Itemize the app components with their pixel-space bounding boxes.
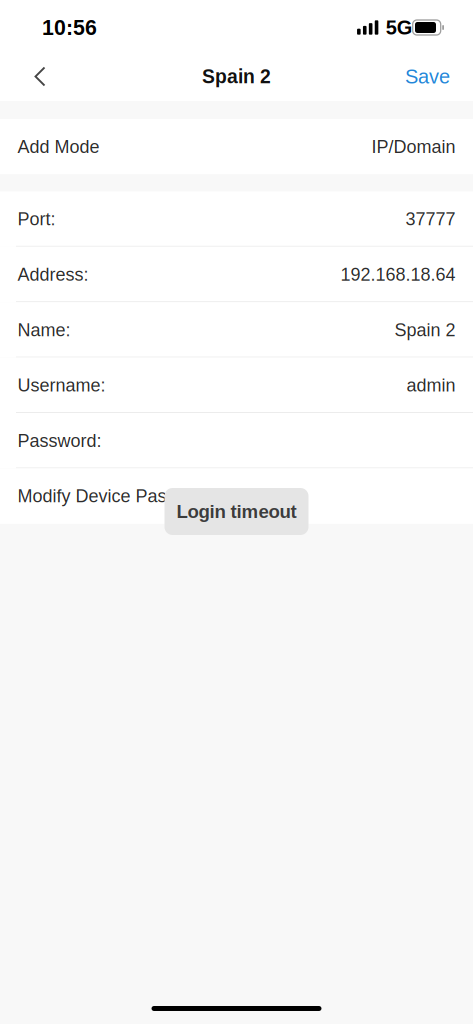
button[interactable]: Modify Device Password [0, 468, 473, 524]
staticText: 10:56 [42, 16, 97, 39]
staticText: 192.168.18.64 [340, 264, 455, 284]
button[interactable]: Save [394, 52, 461, 101]
button[interactable]: Address: [0, 247, 473, 302]
staticText: Username: [17, 375, 105, 395]
staticText: Save [405, 65, 450, 88]
staticText: Port: [17, 209, 55, 229]
button[interactable]: Port: [0, 191, 473, 247]
staticText: Login timeout [176, 501, 296, 522]
staticText: IP/Domain [371, 137, 455, 157]
staticText: Add Mode [17, 137, 99, 157]
staticText: admin [406, 375, 455, 395]
button[interactable]: Back [18, 52, 62, 101]
button[interactable]: Password: [0, 413, 473, 468]
staticText: 37777 [405, 209, 455, 229]
staticText: Modify Device Password [17, 486, 214, 506]
staticText: Password: [17, 431, 101, 451]
button[interactable]: Name: [0, 302, 473, 358]
staticText: Address: [17, 264, 88, 284]
button[interactable]: Username: [0, 358, 473, 413]
staticText: 5G [386, 16, 413, 39]
staticText: Name: [17, 320, 70, 340]
staticText: Spain 2 [202, 66, 271, 87]
button[interactable]: Add Mode [0, 119, 473, 174]
staticText: Spain 2 [394, 320, 455, 340]
